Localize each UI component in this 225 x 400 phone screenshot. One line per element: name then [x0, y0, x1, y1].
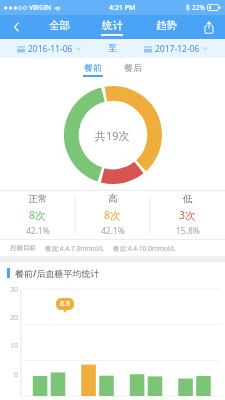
staticText: 0: [0, 370, 18, 380]
button[interactable]: 统计: [85, 15, 139, 39]
staticText: 2017-12-06: [155, 43, 200, 55]
staticText: 共19次: [95, 128, 130, 143]
staticText: 8.8: [60, 299, 70, 309]
button[interactable]: Share: [193, 15, 225, 39]
staticText: 餐前/后血糖平均统计: [15, 267, 100, 279]
button[interactable]: 餐后: [120, 62, 146, 77]
staticText: 8次: [104, 208, 121, 222]
staticText: 餐后:4.4-10.0mmol/L: [113, 244, 176, 253]
staticText: 全部: [49, 19, 70, 32]
staticText: 22%: [192, 3, 205, 12]
button[interactable]: 高: [75, 190, 150, 240]
staticText: 餐后: [124, 62, 142, 73]
staticText: 统计: [102, 19, 123, 32]
staticText: 20: [0, 313, 18, 323]
button[interactable]: 餐前: [80, 62, 106, 77]
staticText: 42.1%: [101, 225, 125, 237]
staticText: 30: [0, 285, 18, 295]
staticText: 餐前:4.4-7.0mmol/L: [45, 244, 104, 253]
button[interactable]: 2016-11-06: [0, 39, 98, 58]
staticText: 控糖目标: [10, 244, 36, 252]
staticText: 至: [108, 43, 117, 54]
staticText: VIRGIN: [29, 3, 52, 12]
staticText: 低: [183, 193, 193, 205]
button[interactable]: 趋势: [139, 15, 193, 39]
button[interactable]: 全部: [32, 15, 85, 39]
staticText: 10: [0, 341, 18, 351]
staticText: 3次: [179, 208, 196, 222]
staticText: 15.8%: [176, 225, 200, 237]
staticText: 8次: [29, 208, 46, 222]
button[interactable]: 正常: [0, 190, 75, 240]
staticText: 餐前: [84, 62, 102, 73]
button[interactable]: 低: [150, 190, 225, 240]
staticText: 2016-11-06: [28, 43, 73, 55]
staticText: 42.1%: [26, 225, 50, 237]
button[interactable]: 2017-12-06: [126, 39, 225, 58]
staticText: 4:21 PM: [109, 3, 136, 13]
staticText: 趋势: [156, 19, 177, 32]
button[interactable]: Back: [0, 15, 32, 39]
staticText: 高: [108, 193, 118, 205]
staticText: 正常: [28, 193, 47, 205]
